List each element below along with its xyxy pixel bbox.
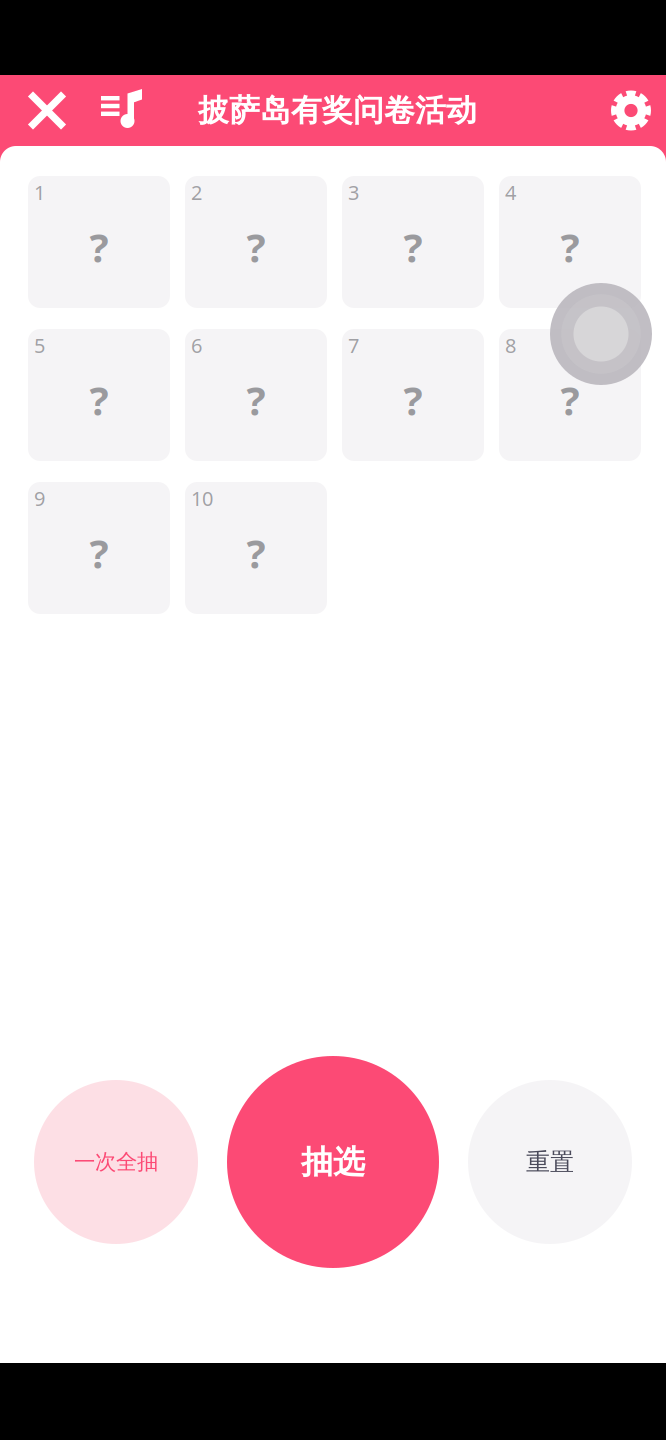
- button[interactable]: Close: [14, 75, 80, 146]
- staticText: 7: [348, 332, 359, 359]
- button[interactable]: 重置: [468, 1080, 632, 1244]
- button[interactable]: 一次全抽: [34, 1080, 198, 1244]
- button[interactable]: 4: [499, 176, 641, 308]
- staticText: 2: [191, 179, 202, 206]
- button[interactable]: 抽选: [227, 1056, 439, 1268]
- staticText: ?: [403, 220, 422, 273]
- staticText: ?: [89, 220, 108, 273]
- button[interactable]: 2: [185, 176, 327, 308]
- staticText: 6: [191, 332, 202, 359]
- staticText: 抽选: [301, 1142, 365, 1182]
- button[interactable]: 1: [28, 176, 170, 308]
- staticText: 披萨岛有奖问卷活动: [198, 92, 477, 129]
- staticText: ?: [89, 526, 108, 579]
- staticText: ?: [560, 373, 579, 426]
- staticText: 4: [505, 179, 516, 206]
- staticText: 8: [505, 332, 516, 359]
- staticText: 一次全抽: [74, 1149, 158, 1175]
- staticText: ?: [89, 373, 108, 426]
- button[interactable]: Settings: [596, 75, 666, 146]
- staticText: 10: [191, 485, 213, 512]
- staticText: 1: [34, 179, 45, 206]
- staticText: ?: [246, 526, 265, 579]
- staticText: 重置: [526, 1147, 574, 1177]
- button[interactable]: Music: [80, 75, 168, 146]
- button[interactable]: 3: [342, 176, 484, 308]
- staticText: 9: [34, 485, 45, 512]
- button[interactable]: 8: [499, 329, 641, 461]
- staticText: ?: [246, 373, 265, 426]
- button[interactable]: 7: [342, 329, 484, 461]
- staticText: 3: [348, 179, 359, 206]
- button[interactable]: 10: [185, 482, 327, 614]
- button[interactable]: 6: [185, 329, 327, 461]
- button[interactable]: 5: [28, 329, 170, 461]
- staticText: ?: [246, 220, 265, 273]
- staticText: ?: [403, 373, 422, 426]
- staticText: 5: [34, 332, 45, 359]
- staticText: ?: [560, 220, 579, 273]
- button[interactable]: 9: [28, 482, 170, 614]
